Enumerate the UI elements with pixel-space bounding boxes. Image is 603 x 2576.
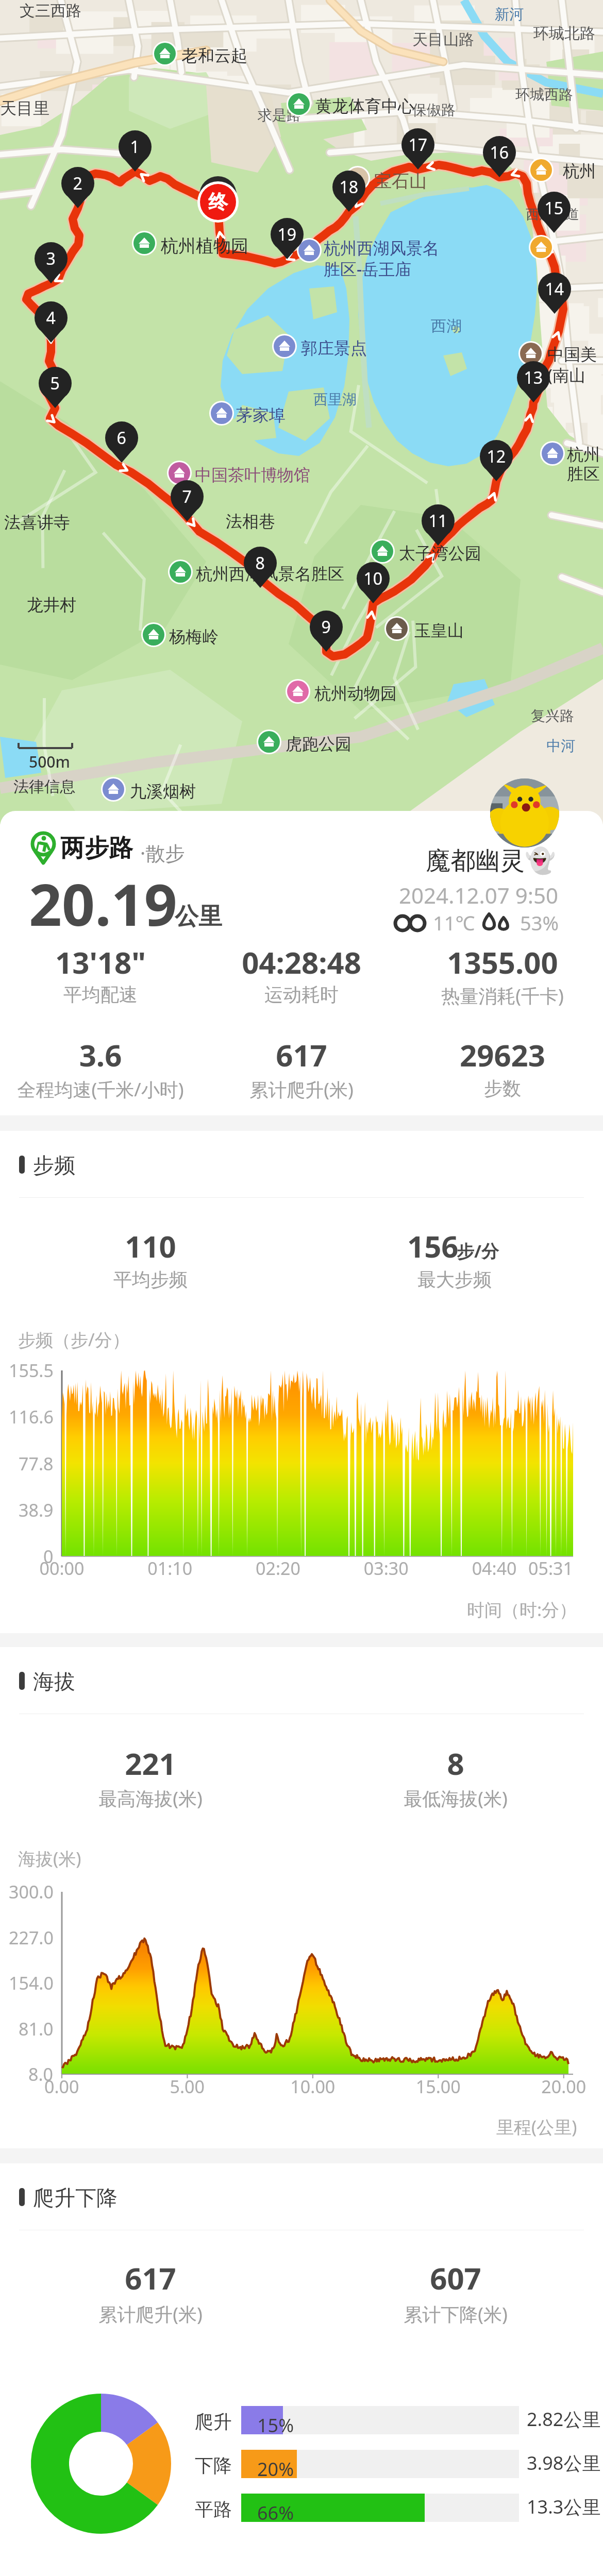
staticText: 全程均速(千米/小时) <box>0 1077 402 1102</box>
button[interactable] <box>0 943 201 1010</box>
staticText: 617 <box>0 2258 452 2298</box>
staticText: 步数 <box>201 1077 603 1100</box>
staticText: 最低海拔(米) <box>154 1786 603 1811</box>
button[interactable] <box>201 943 402 1010</box>
staticText: 平均配速 <box>0 983 402 1006</box>
staticText: 617 <box>0 1035 603 1075</box>
staticText: 13'18" <box>0 942 402 982</box>
staticText: 步频 <box>33 1153 75 1179</box>
staticText: 海拔 <box>33 1669 75 1696</box>
staticText: 运动耗时 <box>0 983 603 1006</box>
staticText: 13.3公里 <box>527 2494 601 2519</box>
staticText: 110 <box>0 1226 452 1266</box>
staticText: 热量消耗(千卡) <box>201 983 603 1008</box>
staticText: 8 <box>154 1743 603 1784</box>
button[interactable] <box>402 943 603 1010</box>
staticText: 最高海拔(米) <box>0 1786 452 1811</box>
button[interactable] <box>0 1036 201 1103</box>
button[interactable] <box>301 1744 603 1811</box>
staticText: 66% <box>257 2500 294 2526</box>
button[interactable] <box>201 1036 402 1103</box>
staticText: 3.6 <box>0 1035 402 1075</box>
button[interactable] <box>0 1227 301 1294</box>
staticText: 11℃ <box>433 909 475 936</box>
staticText: 最大步频 <box>153 1268 603 1291</box>
staticText: 累计下降(米) <box>154 2301 603 2327</box>
staticText: 2.82公里 <box>527 2406 601 2432</box>
staticText: 公里 <box>175 902 222 931</box>
staticText: 平路 <box>195 2498 232 2521</box>
staticText: 两步路 <box>60 833 133 863</box>
staticText: 2024.12.07 9:50 <box>0 880 558 910</box>
staticText: 29623 <box>201 1035 603 1075</box>
button[interactable]: User avatar <box>490 778 559 848</box>
button[interactable] <box>301 1227 603 1294</box>
staticText: 156 <box>407 1226 459 1266</box>
staticText: 20.19 <box>29 864 177 943</box>
staticText: 累计爬升(米) <box>0 2301 452 2327</box>
staticText: 04:28:48 <box>0 942 603 982</box>
staticText: 3.98公里 <box>527 2450 601 2476</box>
staticText: 1355.00 <box>201 942 603 982</box>
staticText: 下降 <box>195 2454 232 2477</box>
staticText: 221 <box>0 1743 452 1784</box>
button[interactable]: 平路 <box>186 2487 603 2529</box>
staticText: ·散步 <box>140 839 185 866</box>
button[interactable] <box>0 1744 301 1811</box>
staticText: 步/分 <box>457 1239 499 1263</box>
button[interactable]: Route map <box>0 0 603 824</box>
staticText: 平均步频 <box>0 1268 452 1291</box>
staticText: 20% <box>257 2456 294 2482</box>
staticText: 累计爬升(米) <box>0 1077 603 1102</box>
button[interactable]: 爬升 <box>186 2400 603 2441</box>
button[interactable] <box>402 1036 603 1103</box>
staticText: 爬升下降 <box>33 2185 118 2212</box>
button[interactable] <box>0 2259 301 2326</box>
staticText: 15% <box>257 2413 294 2438</box>
staticText: 爬升 <box>195 2410 232 2433</box>
button[interactable] <box>301 2259 603 2326</box>
staticText: 53% <box>520 909 559 936</box>
button[interactable]: 下降 <box>186 2444 603 2485</box>
staticText: 魔都幽灵👻 <box>0 845 556 876</box>
staticText: 607 <box>154 2258 603 2298</box>
